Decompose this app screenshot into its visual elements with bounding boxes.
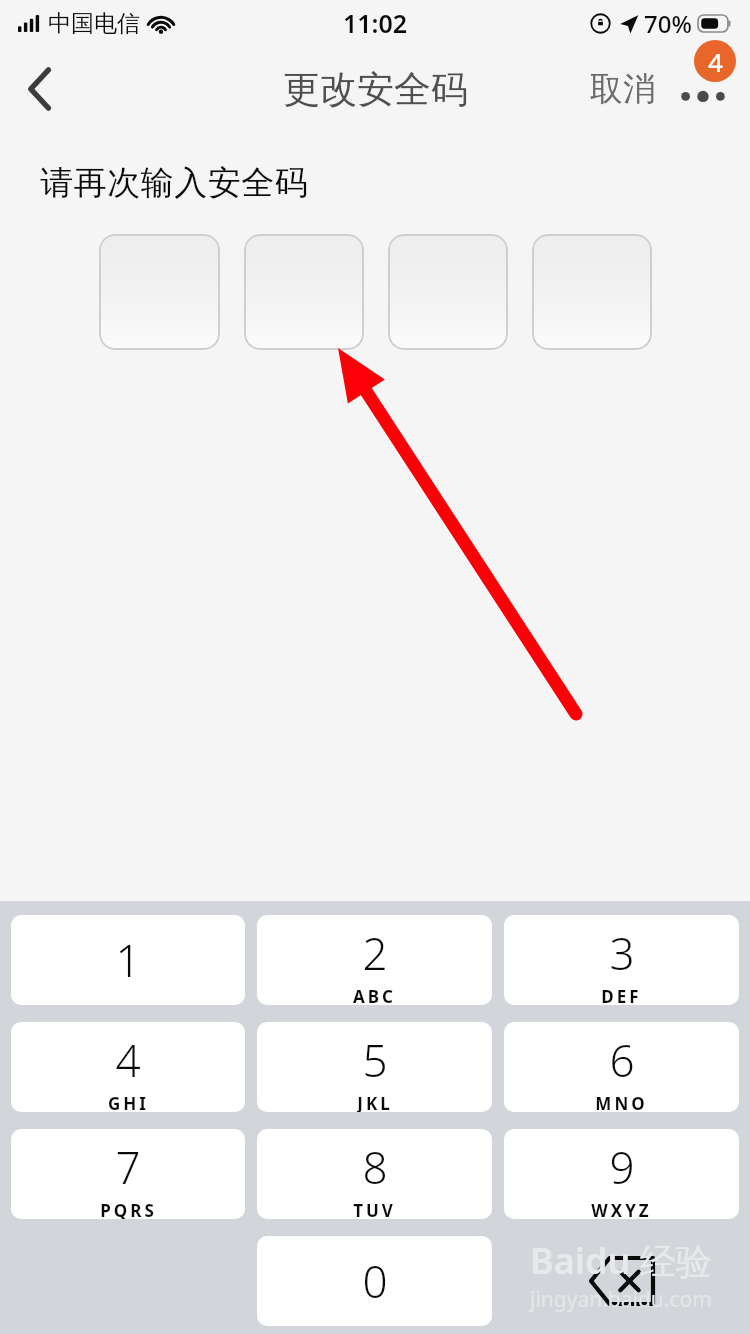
staticText: GHI <box>108 1092 149 1112</box>
staticText: 请再次输入安全码 <box>40 162 308 204</box>
button[interactable]: Security code digit <box>532 234 652 350</box>
staticText: 4 <box>708 44 723 79</box>
button[interactable]: 2 <box>257 915 492 1005</box>
button[interactable]: Security code digit <box>244 234 364 350</box>
button[interactable]: 6 <box>504 1022 739 1112</box>
button[interactable]: 0 <box>257 1236 492 1326</box>
staticText: 4 <box>115 1030 141 1090</box>
staticText: WXYZ <box>591 1199 652 1219</box>
button[interactable]: Security code digit <box>388 234 508 350</box>
staticText: PQRS <box>100 1199 157 1219</box>
staticText: 8 <box>362 1137 388 1197</box>
staticText: 11:02 <box>343 6 408 40</box>
staticText: 7 <box>115 1137 141 1197</box>
button[interactable]: 9 <box>504 1129 739 1219</box>
button[interactable]: More options <box>674 58 732 120</box>
button[interactable]: 5 <box>257 1022 492 1112</box>
button[interactable]: 取消 <box>586 58 660 120</box>
button[interactable]: 1 <box>11 915 245 1005</box>
staticText: Baidu 经验 <box>530 1236 712 1285</box>
button[interactable]: 8 <box>257 1129 492 1219</box>
staticText: 取消 <box>590 68 656 110</box>
button[interactable]: Delete <box>504 1236 739 1326</box>
button[interactable]: Back <box>8 57 72 121</box>
staticText: 中国电信 <box>48 9 140 38</box>
button[interactable]: 3 <box>504 915 739 1005</box>
staticText: MNO <box>595 1092 648 1112</box>
staticText: JKL <box>357 1092 393 1112</box>
staticText: 3 <box>609 923 635 983</box>
staticText: 6 <box>609 1030 635 1090</box>
staticText: TUV <box>353 1199 396 1219</box>
staticText: 9 <box>609 1137 635 1197</box>
button[interactable]: Security code digit <box>99 234 220 350</box>
staticText: 更改安全码 <box>283 66 468 113</box>
staticText: ABC <box>353 985 396 1005</box>
staticText: DEF <box>601 985 642 1005</box>
staticText: 5 <box>362 1030 388 1090</box>
staticText: 0 <box>362 1251 388 1311</box>
staticText: jingyan.baidu.com <box>530 1285 712 1314</box>
button[interactable]: 4 <box>11 1022 245 1112</box>
staticText: 70% <box>644 7 692 40</box>
staticText: 2 <box>362 923 388 983</box>
staticText: 1 <box>115 930 141 990</box>
button[interactable]: 7 <box>11 1129 245 1219</box>
